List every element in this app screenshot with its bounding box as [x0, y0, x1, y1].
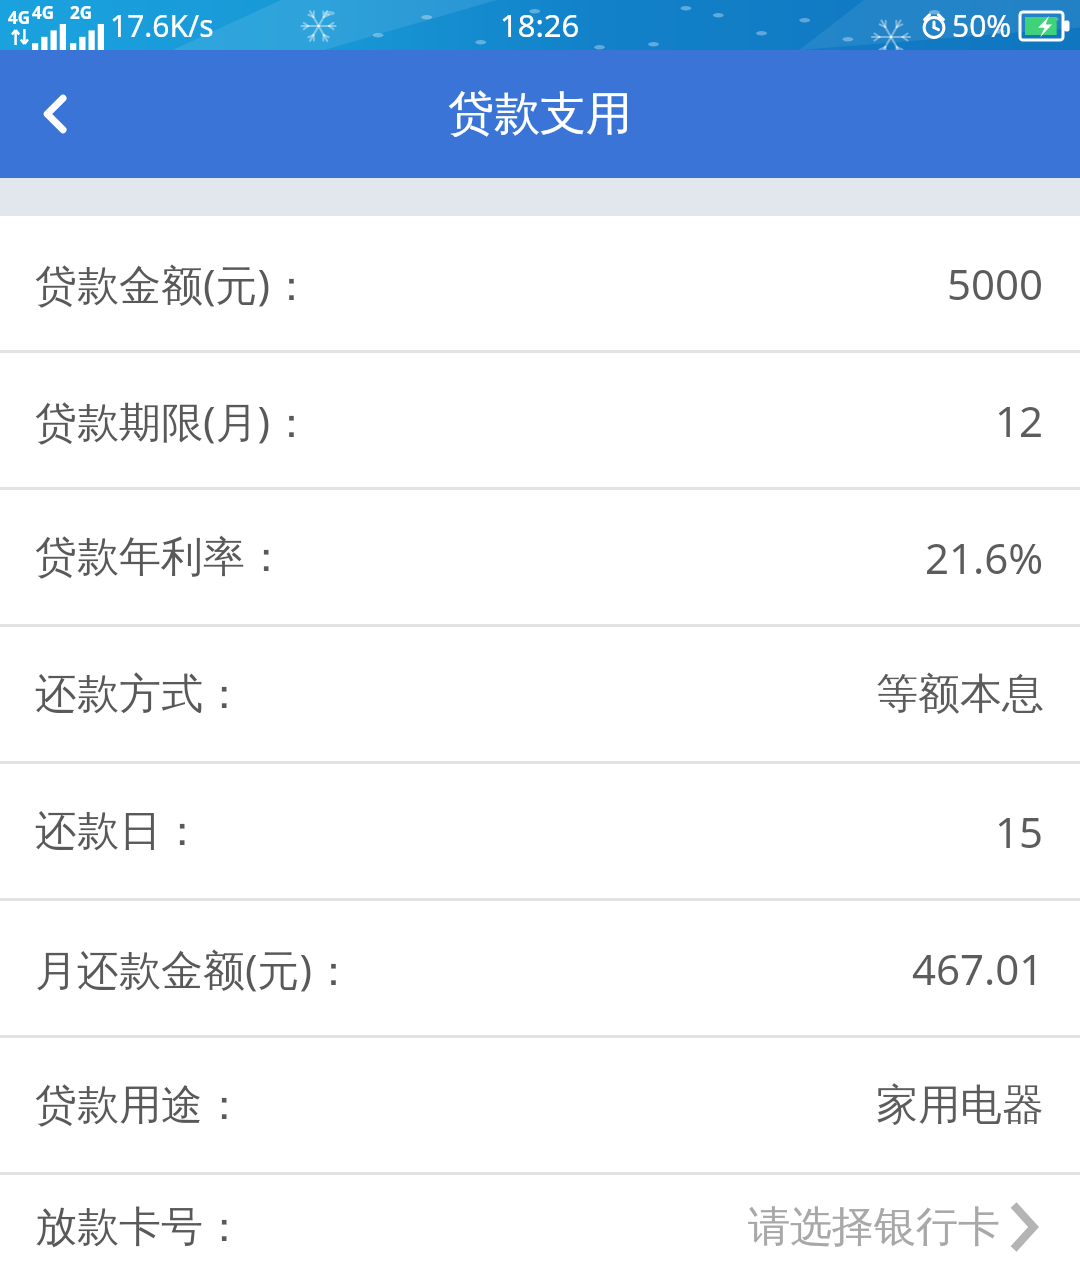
staticText: 等额本息 — [876, 668, 1044, 721]
staticText: 5000 — [947, 255, 1044, 312]
staticText: 请选择银行卡 — [748, 1201, 1000, 1254]
staticText: 还款方式： — [35, 668, 245, 721]
button[interactable]: 贷款年利率： — [0, 490, 1080, 624]
staticText: 放款卡号： — [35, 1201, 245, 1254]
staticText: 467.01 — [912, 940, 1044, 997]
staticText: 贷款金额(元)： — [35, 255, 313, 312]
staticText: 17.6K/s — [110, 5, 214, 46]
button[interactable]: 贷款期限(月)： — [0, 353, 1080, 487]
staticText: 21.6% — [925, 529, 1044, 586]
staticText: 4G — [8, 6, 31, 29]
staticText: 贷款用途： — [35, 1079, 245, 1132]
staticText: 15 — [995, 803, 1044, 860]
staticText: 4G — [32, 1, 55, 24]
staticText: 贷款支用 — [448, 85, 632, 143]
button[interactable]: 还款方式： — [0, 627, 1080, 761]
staticText: 12 — [995, 392, 1044, 449]
staticText: 月还款金额(元)： — [35, 940, 355, 997]
button[interactable]: Back — [0, 58, 112, 170]
button[interactable]: 月还款金额(元)： — [0, 901, 1080, 1035]
staticText: 还款日： — [35, 805, 203, 858]
button[interactable]: 贷款用途： — [0, 1038, 1080, 1172]
staticText: 家用电器 — [876, 1079, 1044, 1132]
staticText: 贷款期限(月)： — [35, 392, 313, 449]
staticText: 50% — [952, 5, 1012, 46]
staticText: 2G — [70, 1, 93, 24]
button[interactable]: 贷款金额(元)： — [0, 216, 1080, 350]
staticText: 贷款年利率： — [35, 531, 287, 584]
button[interactable]: 放款卡号： — [0, 1175, 1080, 1279]
staticText: 18:26 — [500, 4, 580, 46]
button[interactable]: 还款日： — [0, 764, 1080, 898]
